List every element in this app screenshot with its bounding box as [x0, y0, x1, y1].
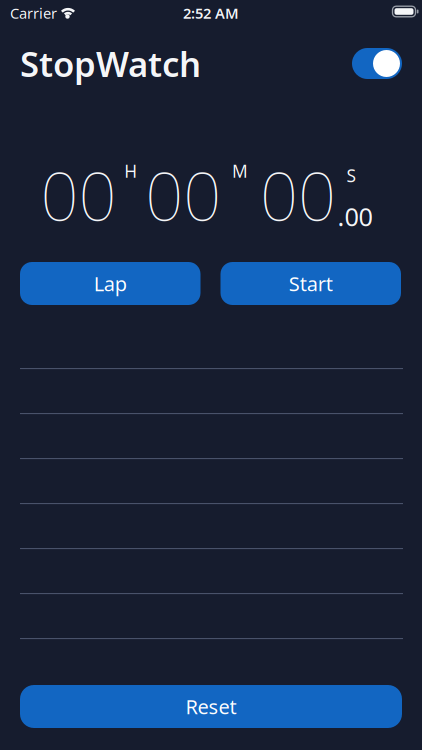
staticText: M — [232, 159, 248, 182]
staticText: Reset — [185, 693, 236, 720]
button[interactable]: Reset — [20, 685, 402, 728]
staticText: 00 — [260, 151, 336, 239]
staticText: S — [346, 164, 356, 187]
staticText: Start — [289, 270, 333, 297]
button[interactable]: Keep screen on — [352, 48, 402, 79]
staticText: 00 — [145, 151, 221, 239]
button[interactable]: Lap — [20, 262, 200, 305]
staticText: H — [124, 159, 137, 182]
staticText: StopWatch — [20, 40, 201, 86]
staticText: 00 — [41, 151, 117, 239]
staticText: .00 — [337, 200, 372, 233]
staticText: Lap — [94, 270, 127, 297]
staticText: 2:52 AM — [183, 3, 239, 23]
button[interactable]: Start — [220, 262, 401, 305]
staticText: Carrier — [10, 3, 57, 23]
